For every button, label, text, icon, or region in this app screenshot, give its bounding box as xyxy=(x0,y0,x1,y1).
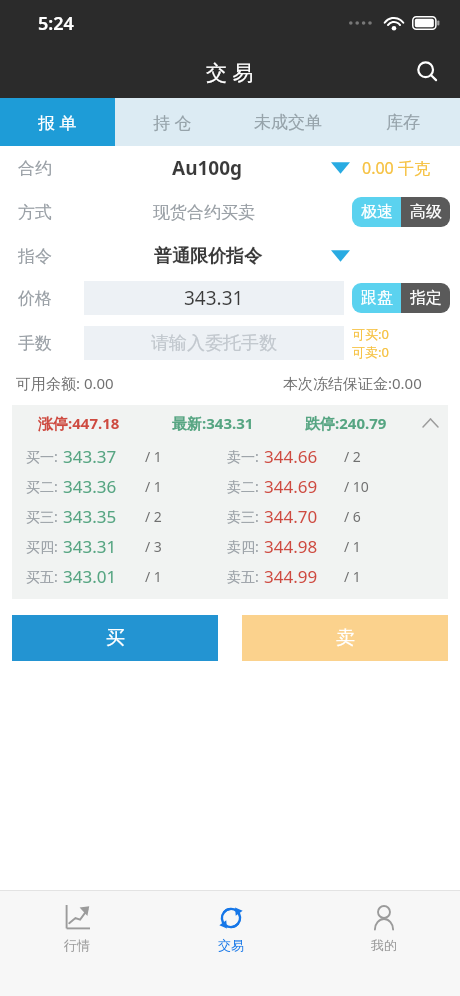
button[interactable]: 我的 xyxy=(307,891,460,996)
staticText: 手数 xyxy=(18,333,84,354)
staticText: 报 单 xyxy=(38,111,77,134)
staticText: 交易 xyxy=(218,937,244,953)
staticText: 行情 xyxy=(64,937,90,953)
staticText: 卖四: xyxy=(227,537,259,556)
button[interactable]: 极速 xyxy=(352,197,401,227)
staticText: 最新:343.31 xyxy=(172,413,254,433)
staticText: / 2 xyxy=(344,447,361,466)
button[interactable]: 普通限价指令 xyxy=(84,234,331,278)
staticText: 我的 xyxy=(371,937,397,953)
staticText: 买四: xyxy=(26,537,58,556)
staticText: / 1 xyxy=(145,567,162,586)
staticText: 343.35 xyxy=(63,505,117,528)
staticText: 可用余额: 0.00 xyxy=(16,373,114,393)
staticText: 344.98 xyxy=(264,535,318,558)
staticText: 344.99 xyxy=(264,565,318,588)
staticText: 指令 xyxy=(18,246,84,267)
button[interactable]: 未成交单 xyxy=(230,98,345,146)
staticText: / 1 xyxy=(344,567,361,586)
staticText: 卖一: xyxy=(227,447,259,466)
staticText: 344.66 xyxy=(264,445,318,468)
staticText: 本次冻结保证金:0.00 xyxy=(283,373,422,393)
button[interactable]: 交易 xyxy=(154,891,307,996)
button[interactable]: 请输入委托手数 xyxy=(84,326,344,360)
staticText: / 1 xyxy=(344,537,361,556)
staticText: 买三: xyxy=(26,507,58,526)
staticText: Au100g xyxy=(172,155,243,181)
button[interactable]: Collapse xyxy=(412,405,448,441)
button[interactable]: 库存 xyxy=(345,98,460,146)
staticText: 0.00 千克 xyxy=(362,157,430,179)
staticText: / 10 xyxy=(344,477,369,496)
staticText: 合约 xyxy=(18,158,84,179)
staticText: 343.31 xyxy=(184,285,244,311)
staticText: / 2 xyxy=(145,507,162,526)
staticText: / 3 xyxy=(145,537,162,556)
staticText: 指定 xyxy=(410,288,442,308)
staticText: 交 易 xyxy=(206,58,254,87)
button[interactable]: Au100g xyxy=(84,146,331,190)
staticText: 买一: xyxy=(26,447,58,466)
staticText: 可买:0 xyxy=(352,325,389,343)
staticText: 卖三: xyxy=(227,507,259,526)
staticText: 343.37 xyxy=(63,445,117,468)
staticText: 343.36 xyxy=(63,475,117,498)
button[interactable]: 跟盘 xyxy=(352,283,401,313)
button[interactable]: Search xyxy=(404,49,450,95)
staticText: 卖五: xyxy=(227,567,259,586)
staticText: 涨停:447.18 xyxy=(38,413,120,433)
staticText: 极速 xyxy=(361,202,393,222)
staticText: 5:24 xyxy=(38,11,74,36)
button[interactable]: 行情 xyxy=(0,891,154,996)
staticText: 卖二: xyxy=(227,477,259,496)
staticText: 未成交单 xyxy=(254,112,322,133)
button[interactable]: 卖 xyxy=(242,615,448,661)
staticText: 可卖:0 xyxy=(352,343,389,361)
staticText: 请输入委托手数 xyxy=(151,332,277,355)
button[interactable]: 持 仓 xyxy=(115,98,230,146)
staticText: 现货合约买卖 xyxy=(153,202,255,223)
staticText: 方式 xyxy=(18,202,84,223)
button[interactable]: 报 单 xyxy=(0,98,115,146)
staticText: 343.31 xyxy=(63,535,117,558)
staticText: 跟盘 xyxy=(361,288,393,308)
button[interactable]: 指定 xyxy=(401,283,450,313)
staticText: / 6 xyxy=(344,507,361,526)
staticText: 买二: xyxy=(26,477,58,496)
staticText: 普通限价指令 xyxy=(154,245,262,268)
staticText: / 1 xyxy=(145,477,162,496)
staticText: 高级 xyxy=(410,202,442,222)
staticText: 库存 xyxy=(386,112,420,133)
button[interactable]: 高级 xyxy=(401,197,450,227)
staticText: 持 仓 xyxy=(153,111,192,134)
button[interactable]: 343.31 xyxy=(84,281,344,315)
staticText: 343.01 xyxy=(63,565,117,588)
button[interactable]: 买 xyxy=(12,615,218,661)
staticText: 价格 xyxy=(18,288,84,309)
staticText: 344.69 xyxy=(264,475,318,498)
staticText: 344.70 xyxy=(264,505,318,528)
staticText: / 1 xyxy=(145,447,162,466)
staticText: 买 xyxy=(106,626,125,650)
staticText: 跌停:240.79 xyxy=(305,413,387,433)
staticText: 买五: xyxy=(26,567,58,586)
staticText: 卖 xyxy=(336,626,355,650)
